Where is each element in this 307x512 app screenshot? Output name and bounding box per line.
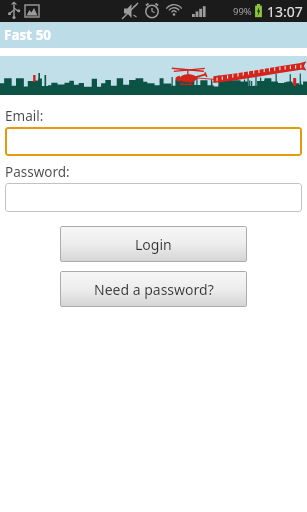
button[interactable]	[5, 183, 302, 212]
button[interactable]: Need a password?	[60, 271, 247, 307]
staticText: Fast 50	[4, 26, 52, 44]
button[interactable]: Login	[60, 226, 247, 262]
staticText: Need a password?	[94, 280, 214, 299]
staticText: Email:	[5, 107, 44, 125]
staticText: 13:07	[267, 2, 303, 21]
button[interactable]	[5, 127, 302, 156]
staticText: 99%	[233, 5, 252, 18]
staticText: Password:	[5, 163, 70, 181]
staticText: Login	[135, 235, 172, 254]
